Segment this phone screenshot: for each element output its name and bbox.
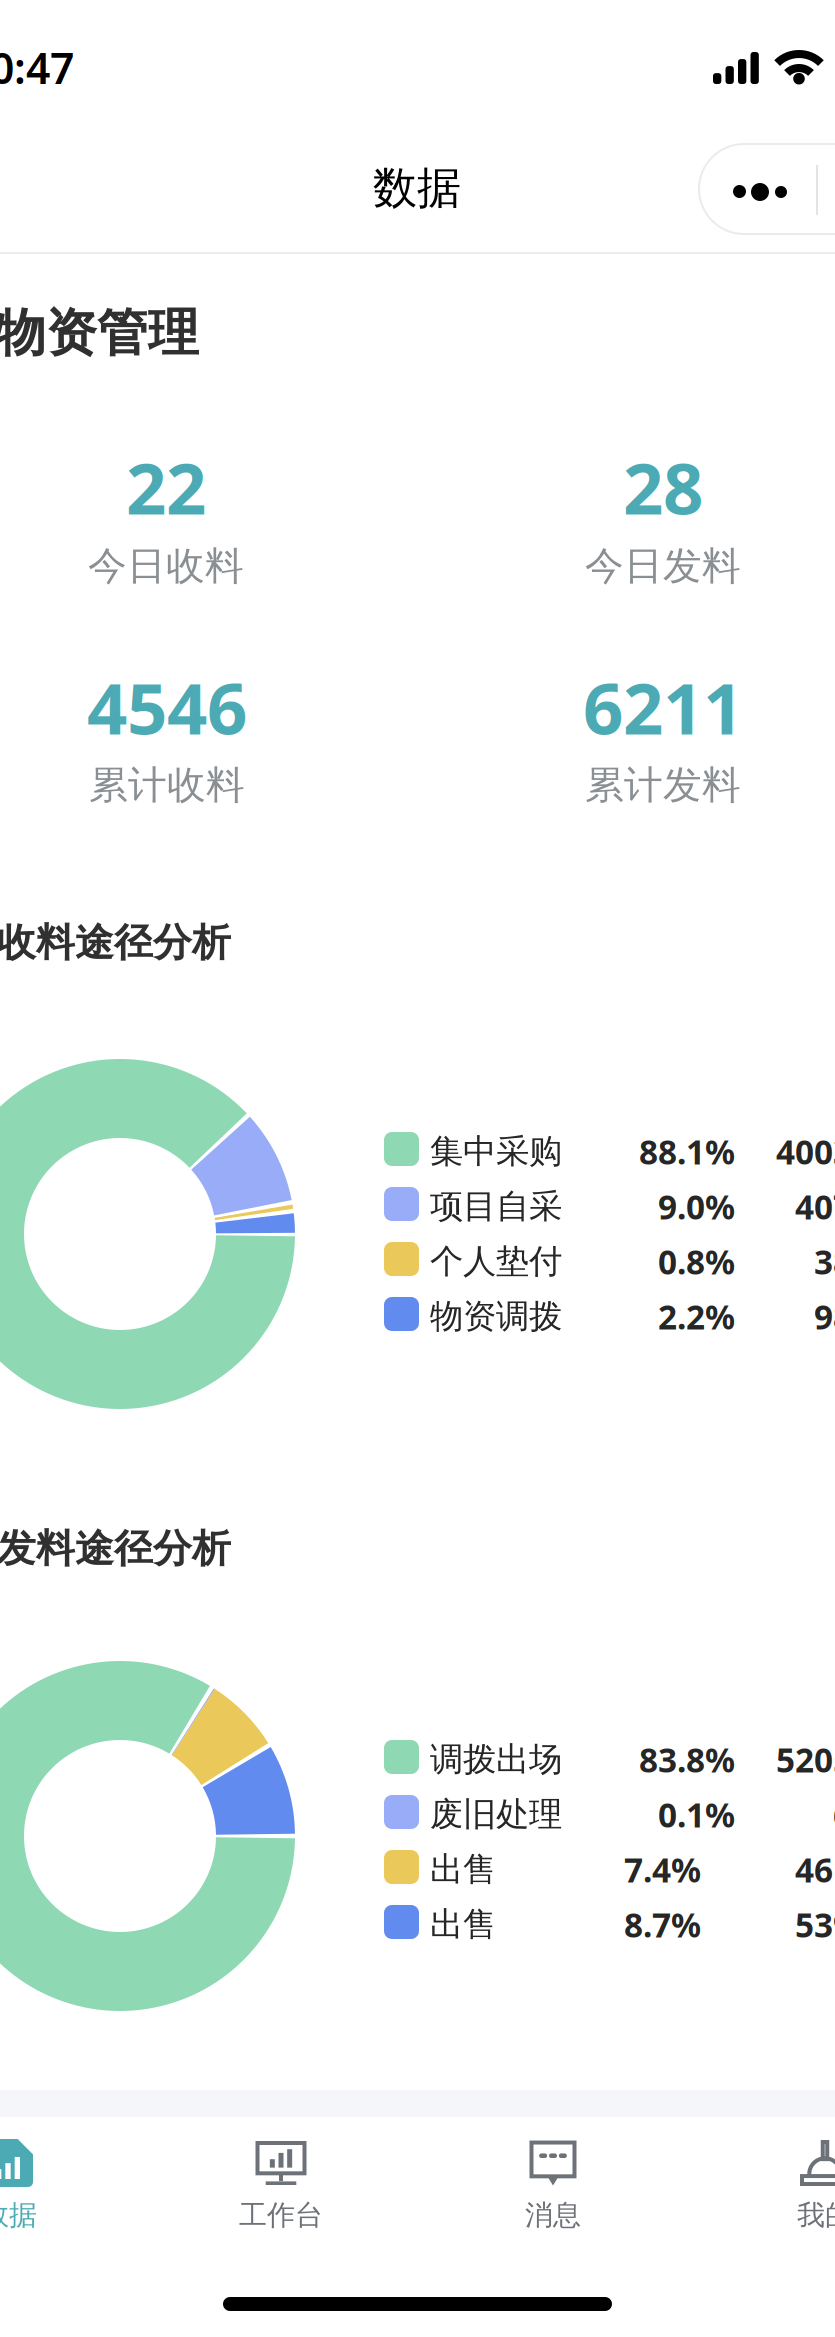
button[interactable]: 我的	[689, 2138, 835, 2232]
staticText: 物资调拨	[430, 1296, 562, 1337]
staticText: 8.7%	[624, 1902, 701, 1947]
staticText: 22	[126, 440, 206, 534]
button[interactable]: 消息	[417, 2138, 689, 2232]
staticText: 987	[814, 1294, 835, 1339]
staticText: 工作台	[239, 2198, 323, 2232]
staticText: 62	[833, 1792, 835, 1837]
staticText: 4079	[795, 1184, 835, 1229]
staticText: 5391	[795, 1902, 835, 1947]
staticText: 累计收料	[89, 761, 245, 809]
staticText: 10:47	[0, 39, 74, 96]
staticText: 收料途径分析	[0, 919, 231, 966]
staticText: 消息	[525, 2198, 581, 2232]
staticText: 项目自采	[430, 1186, 562, 1227]
staticText: 52055	[776, 1737, 835, 1782]
staticText: 2.2%	[658, 1294, 735, 1339]
staticText: 382	[814, 1239, 835, 1284]
staticText: 发料途径分析	[0, 1525, 231, 1572]
staticText: 集中采购	[430, 1131, 562, 1172]
staticText: 今日发料	[585, 542, 741, 590]
staticText: 累计发料	[585, 761, 741, 809]
staticText: 6211	[583, 660, 743, 754]
staticText: 今日收料	[88, 542, 244, 590]
staticText: 数据	[373, 161, 461, 215]
staticText: 出售	[430, 1849, 496, 1890]
staticText: 废旧处理	[430, 1794, 562, 1835]
staticText: 4613	[795, 1847, 835, 1892]
staticText: 88.1%	[639, 1129, 735, 1174]
button[interactable]: 工作台	[145, 2138, 417, 2232]
staticText: 0.8%	[658, 1239, 735, 1284]
staticText: 调拨出场	[430, 1739, 562, 1780]
staticText: 数据	[0, 2198, 37, 2232]
staticText: 28	[623, 440, 703, 534]
staticText: 物资管理	[0, 302, 199, 364]
staticText: 9.0%	[658, 1184, 735, 1229]
staticText: 0.1%	[658, 1792, 735, 1837]
staticText: 出售	[430, 1904, 496, 1945]
button[interactable]: 数据	[0, 2138, 145, 2232]
staticText: 我的	[797, 2198, 835, 2232]
staticText: 个人垫付	[430, 1241, 562, 1282]
staticText: 7.4%	[624, 1847, 701, 1892]
staticText: 83.8%	[639, 1737, 735, 1782]
staticText: 40033	[776, 1129, 835, 1174]
staticText: 4546	[87, 660, 247, 754]
button[interactable]: More	[699, 144, 835, 234]
